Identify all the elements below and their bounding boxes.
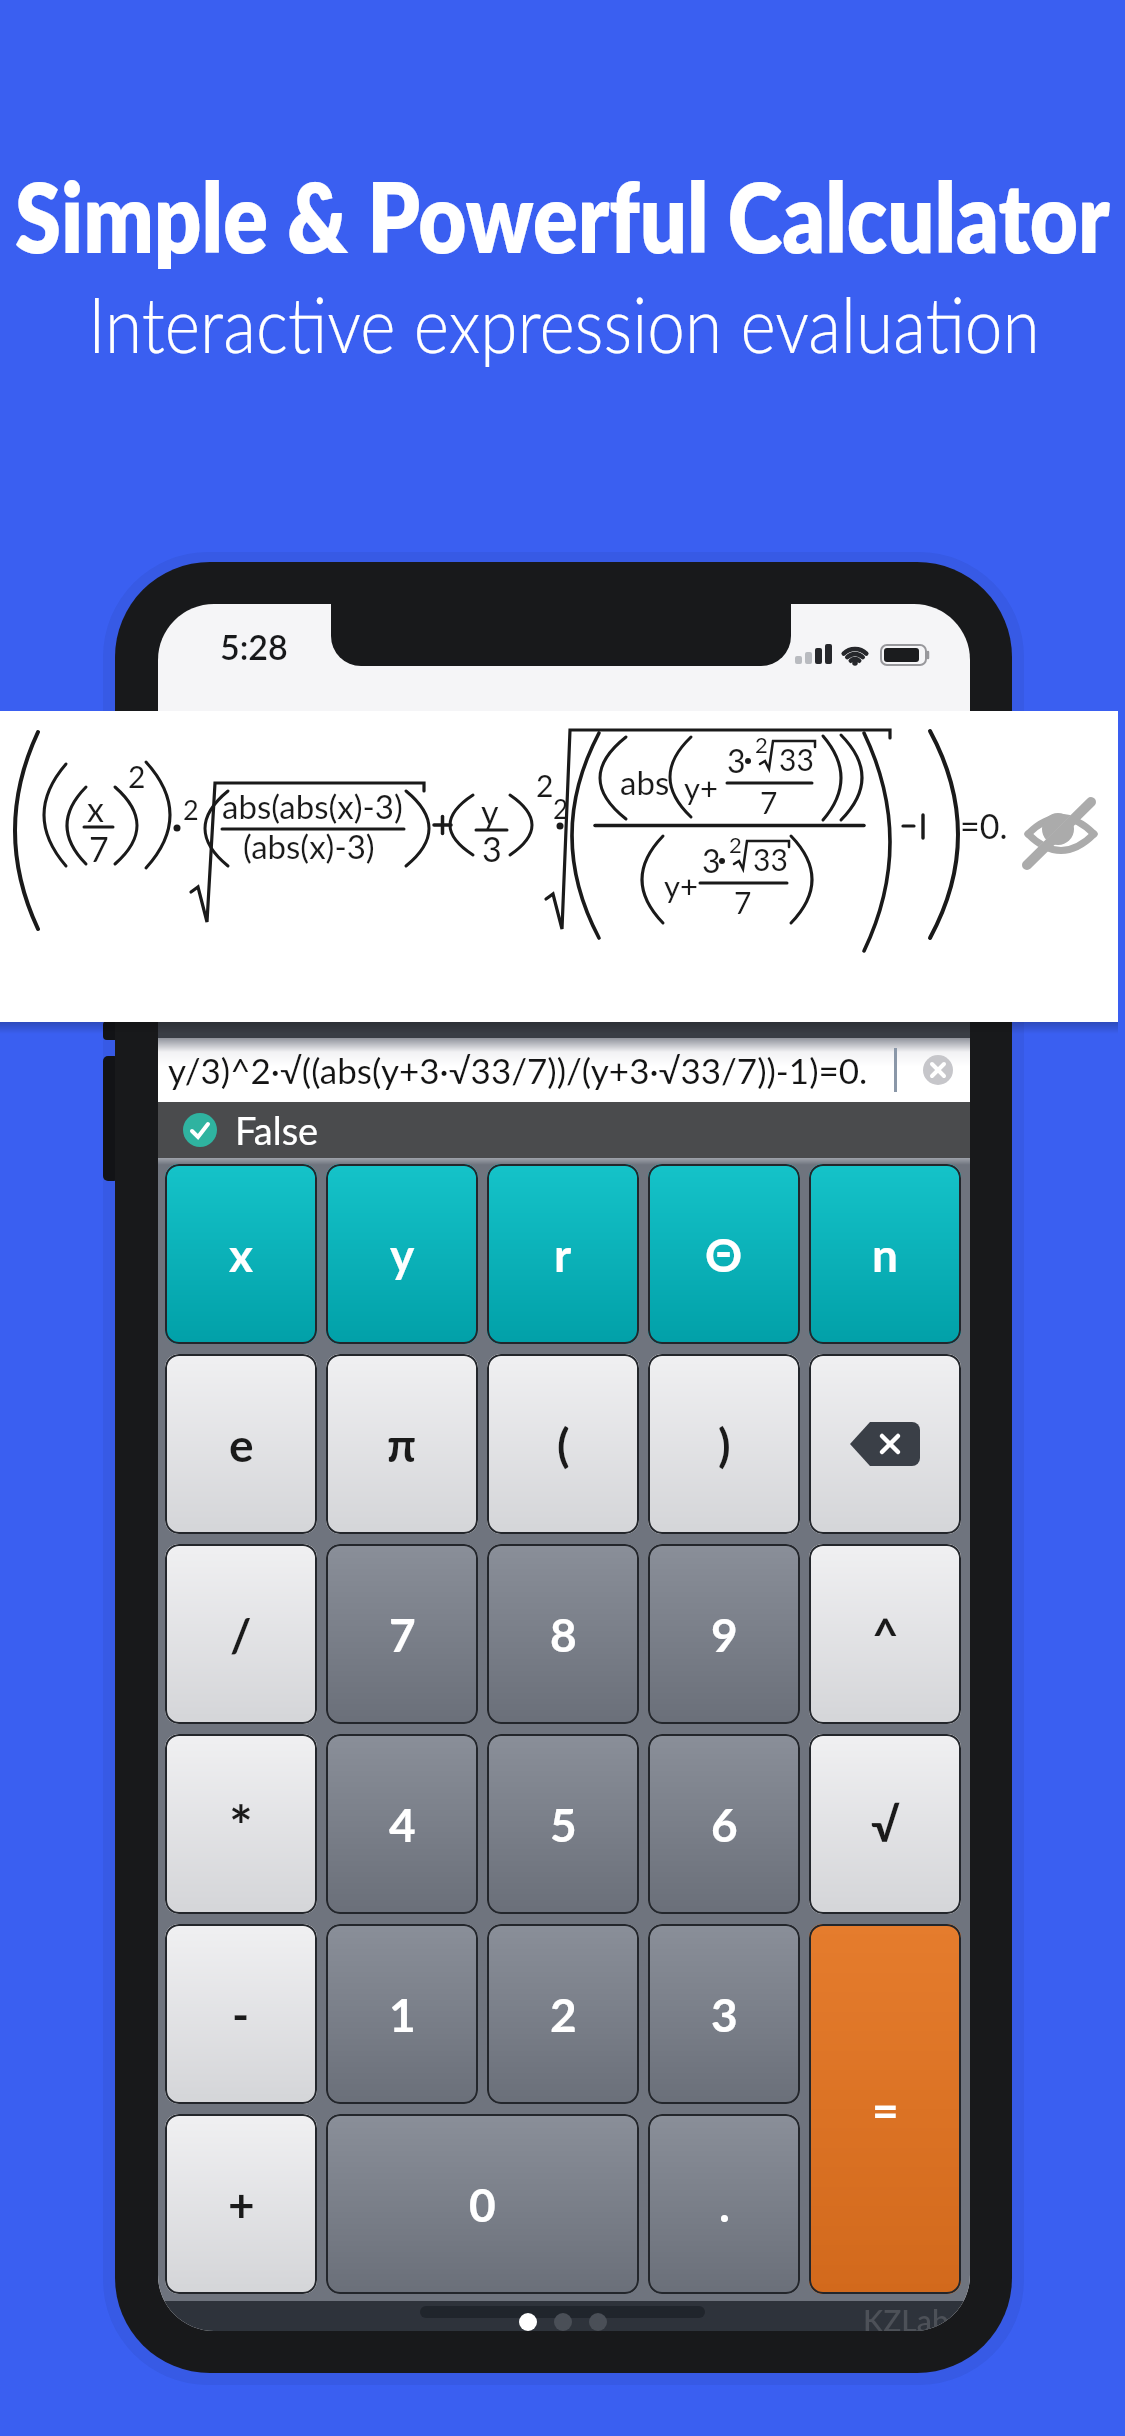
- staticText: ^: [872, 1607, 899, 1662]
- button[interactable]: ): [648, 1354, 800, 1534]
- staticText: π: [387, 1417, 417, 1472]
- button[interactable]: +: [165, 2114, 317, 2294]
- staticText: r: [554, 1227, 572, 1282]
- staticText: 7: [389, 1607, 416, 1662]
- staticText: False: [235, 1107, 319, 1153]
- staticText: 8: [550, 1607, 577, 1662]
- staticText: 0: [469, 2177, 496, 2232]
- button[interactable]: 2: [487, 1924, 639, 2104]
- staticText: .: [719, 2177, 730, 2232]
- button[interactable]: y: [326, 1164, 478, 1344]
- staticText: y/3)^2·√((abs(y+3·√33/7))/(y+3·√33/7))-1…: [168, 1049, 868, 1091]
- staticText: *: [229, 1791, 253, 1858]
- button[interactable]: ^: [809, 1544, 961, 1724]
- button[interactable]: 4: [326, 1734, 478, 1914]
- button[interactable]: 7: [326, 1544, 478, 1724]
- button[interactable]: e: [165, 1354, 317, 1534]
- button[interactable]: 8: [487, 1544, 639, 1724]
- staticText: n: [872, 1227, 898, 1282]
- button[interactable]: x: [165, 1164, 317, 1344]
- staticText: (: [557, 1417, 570, 1472]
- button[interactable]: .: [648, 2114, 800, 2294]
- staticText: 3: [711, 1987, 738, 2042]
- staticText: e: [229, 1417, 254, 1472]
- staticText: ): [718, 1417, 731, 1472]
- button[interactable]: [809, 1354, 961, 1534]
- staticText: √: [871, 1797, 900, 1852]
- button[interactable]: 5: [487, 1734, 639, 1914]
- staticText: /: [230, 1607, 252, 1662]
- staticText: 5: [550, 1797, 577, 1852]
- button[interactable]: 3: [648, 1924, 800, 2104]
- staticText: 2: [550, 1987, 577, 2042]
- staticText: 9: [711, 1607, 738, 1662]
- staticText: 1: [389, 1987, 416, 2042]
- staticText: Θ: [705, 1227, 743, 1282]
- button[interactable]: r: [487, 1164, 639, 1344]
- staticText: KZLab: [863, 2302, 949, 2331]
- staticText: y: [390, 1227, 415, 1282]
- staticText: 5:28: [220, 626, 288, 667]
- button[interactable]: /: [165, 1544, 317, 1724]
- staticText: x: [229, 1227, 254, 1282]
- button[interactable]: [923, 1055, 953, 1085]
- staticText: =: [872, 2082, 899, 2137]
- button[interactable]: 6: [648, 1734, 800, 1914]
- button[interactable]: n: [809, 1164, 961, 1344]
- button[interactable]: =: [809, 1924, 961, 2294]
- staticText: 6: [711, 1797, 738, 1852]
- button[interactable]: 0: [326, 2114, 639, 2294]
- button[interactable]: -: [165, 1924, 317, 2104]
- button[interactable]: (: [487, 1354, 639, 1534]
- button[interactable]: *: [165, 1734, 317, 1914]
- button[interactable]: Θ: [648, 1164, 800, 1344]
- staticText: +: [228, 2177, 255, 2232]
- staticText: -: [232, 1987, 250, 2042]
- button[interactable]: 9: [648, 1544, 800, 1724]
- button[interactable]: 1: [326, 1924, 478, 2104]
- staticText: 4: [389, 1797, 416, 1852]
- button[interactable]: π: [326, 1354, 478, 1534]
- button[interactable]: √: [809, 1734, 961, 1914]
